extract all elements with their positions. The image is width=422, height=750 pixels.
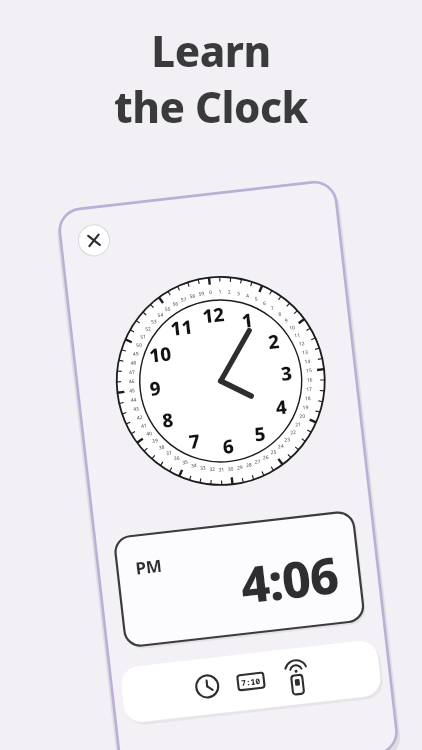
staticText: the Clock <box>0 78 422 135</box>
button[interactable] <box>0 0 422 750</box>
staticText: Learn <box>0 22 422 79</box>
